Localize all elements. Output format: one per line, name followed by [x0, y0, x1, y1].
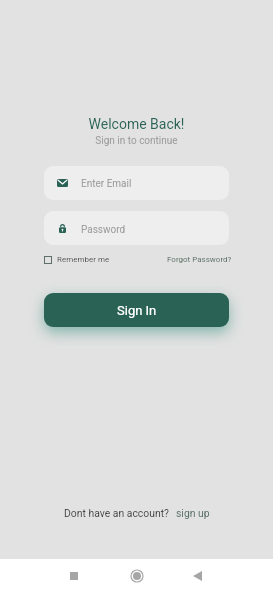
button[interactable]: Sign In — [44, 293, 229, 327]
button[interactable]: Home — [123, 562, 151, 590]
staticText: Sign in to continue — [0, 135, 273, 147]
staticText: Sign In — [117, 303, 157, 318]
button[interactable]: Enter Email — [44, 166, 229, 200]
button[interactable]: sign up — [176, 507, 210, 519]
button[interactable]: Password — [44, 211, 229, 245]
button[interactable]: Recent apps — [60, 562, 88, 590]
button[interactable]: Back — [183, 562, 211, 590]
button[interactable]: Forgot Password? — [167, 255, 232, 264]
staticText: Password — [81, 224, 126, 236]
staticText: Remember me — [57, 255, 110, 264]
button[interactable]: Remember me — [44, 255, 110, 264]
staticText: Welcome Back! — [0, 116, 273, 132]
staticText: Enter Email — [81, 178, 132, 190]
staticText: Dont have an account? — [64, 507, 170, 519]
